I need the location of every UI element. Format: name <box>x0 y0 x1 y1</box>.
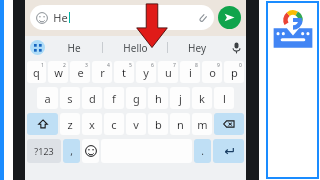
staticText: a <box>44 91 51 106</box>
staticText: n <box>177 117 184 132</box>
staticText: , <box>70 144 73 158</box>
staticText: 5 <box>129 62 132 69</box>
staticText: He <box>67 41 81 55</box>
staticText: h <box>155 91 162 106</box>
button[interactable]: a <box>37 87 58 109</box>
button[interactable]: l <box>214 87 234 109</box>
staticText: w <box>54 65 63 80</box>
staticText: ?123 <box>34 145 54 157</box>
staticText: 8 <box>195 62 198 69</box>
button[interactable]: Emoji <box>82 139 99 163</box>
staticText: He <box>53 10 68 25</box>
button[interactable]: p <box>224 61 244 83</box>
button[interactable]: g <box>126 87 146 109</box>
staticText: . <box>201 144 204 158</box>
staticText: d <box>89 91 96 106</box>
button[interactable]: Voice input <box>226 36 246 59</box>
button[interactable]: f <box>104 87 124 109</box>
button[interactable]: z <box>60 113 80 135</box>
button[interactable]: Shift <box>27 113 58 135</box>
button[interactable]: b <box>148 113 168 135</box>
button[interactable]: More options <box>30 40 45 55</box>
button[interactable]: o <box>202 61 222 83</box>
button[interactable]: t <box>114 61 134 83</box>
button[interactable]: e <box>70 61 90 83</box>
staticText: g <box>133 91 140 106</box>
staticText: 9 <box>217 62 220 69</box>
staticText: e <box>77 65 84 80</box>
staticText: l <box>223 91 226 106</box>
staticText: b <box>155 117 162 132</box>
button[interactable]: Backspace <box>214 113 244 135</box>
staticText: u <box>165 65 172 80</box>
button[interactable]: He <box>45 36 102 59</box>
button[interactable]: , <box>63 139 80 163</box>
staticText: Hello <box>123 41 148 55</box>
button[interactable]: i <box>180 61 200 83</box>
staticText: f <box>112 91 116 106</box>
button[interactable]: c <box>104 113 124 135</box>
button[interactable]: h <box>148 87 168 109</box>
button[interactable]: Hello <box>103 36 167 59</box>
button[interactable]: w <box>48 61 68 83</box>
staticText: 1 <box>41 62 44 69</box>
button[interactable]: r <box>92 61 112 83</box>
button[interactable]: Emoji <box>30 5 214 30</box>
button[interactable]: Send <box>218 6 241 29</box>
staticText: 4 <box>107 62 110 69</box>
staticText: y <box>143 65 149 80</box>
button[interactable]: Enter <box>213 139 244 163</box>
button[interactable]: ?123 <box>27 139 61 163</box>
button[interactable]: y <box>136 61 156 83</box>
staticText: i <box>189 65 192 80</box>
staticText: o <box>209 65 216 80</box>
button[interactable]: x <box>82 113 102 135</box>
button[interactable]: . <box>194 139 211 163</box>
other: Emoji <box>36 12 48 24</box>
staticText: 6 <box>151 62 154 69</box>
button[interactable]: d <box>82 87 102 109</box>
button[interactable]: q <box>27 61 46 83</box>
staticText: t <box>122 65 126 80</box>
staticText: 3 <box>85 62 88 69</box>
staticText: c <box>111 117 117 132</box>
button[interactable]: k <box>192 87 212 109</box>
staticText: r <box>100 65 105 80</box>
staticText: Hey <box>188 41 206 55</box>
staticText: q <box>33 65 40 80</box>
staticText: x <box>89 117 95 132</box>
button[interactable]: Hey <box>168 36 226 59</box>
staticText: 7 <box>173 62 176 69</box>
button[interactable]: j <box>170 87 190 109</box>
button[interactable]: s <box>60 87 80 109</box>
button[interactable]: u <box>158 61 178 83</box>
staticText: z <box>67 117 73 132</box>
button[interactable]: m <box>192 113 212 135</box>
staticText: m <box>197 117 208 132</box>
staticText: 2 <box>63 62 66 69</box>
staticText: v <box>133 117 139 132</box>
staticText: j <box>179 91 182 106</box>
staticText: s <box>67 91 73 106</box>
staticText: k <box>199 91 205 106</box>
button[interactable]: v <box>126 113 146 135</box>
other: Attach <box>197 12 208 23</box>
staticText: 0 <box>239 62 242 69</box>
staticText: p <box>231 65 238 80</box>
button[interactable]: n <box>170 113 190 135</box>
